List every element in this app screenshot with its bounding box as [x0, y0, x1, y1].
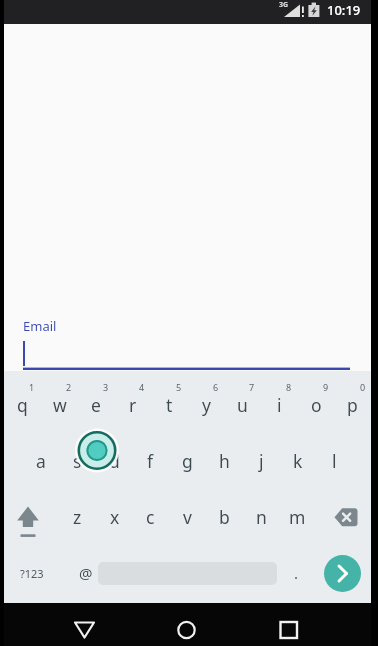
staticText: e [91, 393, 101, 417]
staticText: r [129, 393, 137, 417]
button[interactable]: x [96, 489, 133, 545]
button[interactable]: g [169, 433, 206, 489]
staticText: g [182, 449, 193, 473]
staticText: q [17, 393, 28, 417]
staticText: 9 [323, 381, 329, 393]
staticText: y [202, 393, 211, 417]
staticText: z [73, 505, 82, 529]
button[interactable]: q [4, 377, 41, 433]
button[interactable]: i [261, 377, 298, 433]
staticText: o [311, 393, 322, 417]
button[interactable]: Email [23, 317, 83, 335]
button[interactable] [316, 489, 371, 545]
button[interactable]: j [243, 433, 280, 489]
staticText: v [183, 505, 192, 529]
staticText: 2 [66, 381, 72, 393]
button[interactable] [167, 607, 207, 643]
staticText: j [259, 449, 264, 473]
staticText: u [237, 393, 248, 417]
staticText: 1 [29, 381, 35, 393]
staticText: p [347, 393, 358, 417]
button[interactable]: e [77, 377, 114, 433]
staticText: m [289, 505, 306, 529]
button[interactable] [324, 555, 361, 592]
button[interactable]: l [316, 433, 353, 489]
button[interactable]: y [188, 377, 225, 433]
button[interactable]: v [169, 489, 206, 545]
staticText: t [166, 393, 173, 417]
button[interactable]: p [334, 377, 371, 433]
staticText: a [36, 449, 46, 473]
staticText: h [219, 449, 230, 473]
staticText: 3 [103, 381, 109, 393]
button[interactable]: ?123 [4, 545, 60, 601]
staticText: x [110, 505, 120, 529]
staticText: 0 [360, 381, 366, 393]
staticText: 8 [286, 381, 292, 393]
staticText: . [294, 563, 299, 583]
button[interactable]: t [151, 377, 188, 433]
button[interactable]: w [41, 377, 78, 433]
button[interactable]: @ [67, 545, 104, 601]
staticText: l [332, 449, 337, 473]
button[interactable]: m [279, 489, 316, 545]
staticText: n [256, 505, 267, 529]
button[interactable] [269, 607, 309, 643]
staticText: 7 [249, 381, 255, 393]
staticText: c [146, 505, 155, 529]
staticText: b [219, 505, 230, 529]
button[interactable]: z [59, 489, 96, 545]
staticText: i [277, 393, 282, 417]
button[interactable]: f [132, 433, 169, 489]
button[interactable] [4, 489, 59, 545]
staticText: 6 [213, 381, 219, 393]
button[interactable]: s [59, 433, 96, 489]
button[interactable]: u [224, 377, 261, 433]
button[interactable]: k [279, 433, 316, 489]
button[interactable]: d [96, 433, 133, 489]
staticText: Email [23, 317, 57, 335]
button[interactable] [64, 607, 104, 643]
button[interactable]: b [206, 489, 243, 545]
staticText: 4 [139, 381, 145, 393]
button[interactable]: r [114, 377, 151, 433]
staticText: 5 [176, 381, 182, 393]
staticText: w [53, 393, 67, 417]
button[interactable]: o [298, 377, 335, 433]
button[interactable]: h [206, 433, 243, 489]
button[interactable]: c [132, 489, 169, 545]
staticText: 3G [279, 0, 289, 10]
staticText: s [73, 449, 82, 473]
staticText: f [147, 449, 154, 473]
staticText: k [293, 449, 303, 473]
button[interactable]: n [243, 489, 280, 545]
staticText: d [109, 449, 120, 473]
staticText: ?123 [20, 566, 44, 581]
staticText: @ [79, 563, 93, 583]
button[interactable]: a [22, 433, 59, 489]
staticText: 10:19 [327, 1, 361, 19]
button[interactable]: . [278, 545, 315, 601]
